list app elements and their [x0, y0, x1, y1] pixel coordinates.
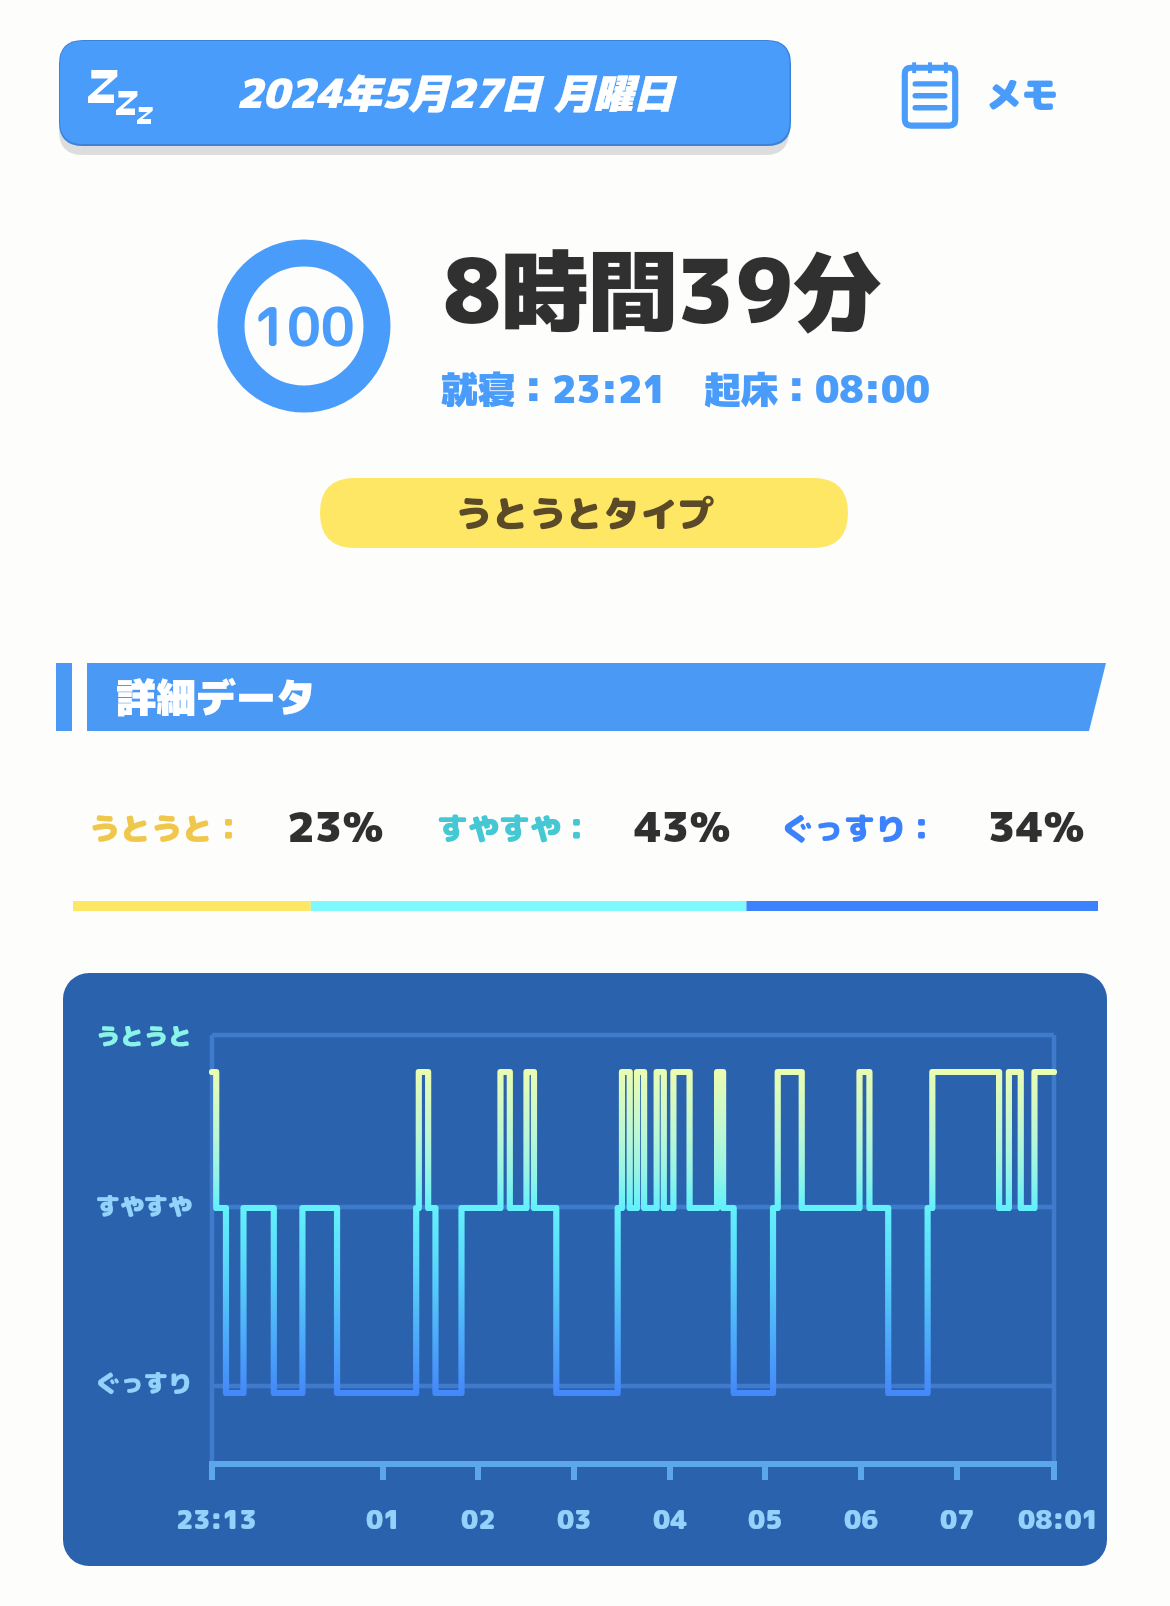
staticText: 8時間39分 — [443, 228, 882, 351]
staticText: 就寝：23:21 起床：08:00 — [441, 363, 930, 415]
staticText: うとうと — [96, 1019, 192, 1052]
staticText: うとうとタイプ — [455, 487, 714, 539]
staticText: メモ — [986, 69, 1059, 119]
staticText: 43% — [634, 797, 731, 856]
staticText: うとうと： — [89, 807, 244, 850]
staticText: 34% — [988, 797, 1085, 856]
staticText: 01 — [366, 1501, 401, 1535]
staticText: すやすや — [96, 1189, 192, 1222]
staticText: 05 — [748, 1501, 783, 1535]
staticText: 04 — [653, 1501, 688, 1535]
button[interactable]: メモ — [894, 56, 1059, 132]
button[interactable]: うとうとタイプ — [320, 478, 848, 548]
staticText: 08:01 — [1018, 1501, 1099, 1535]
staticText: 詳細データ — [116, 669, 316, 725]
staticText: ぐっすり — [96, 1366, 192, 1399]
staticText: 06 — [844, 1501, 879, 1535]
staticText: 07 — [940, 1501, 975, 1535]
staticText: 02 — [461, 1501, 496, 1535]
staticText: 03 — [557, 1501, 592, 1535]
staticText: 100 — [253, 289, 355, 363]
staticText: 23% — [287, 797, 384, 856]
staticText: すやすや： — [437, 807, 592, 850]
button[interactable]: 2024年5月27日 月曜日 — [60, 41, 790, 145]
staticText: 2024年5月27日 月曜日 — [236, 65, 674, 121]
staticText: ぐっすり： — [782, 807, 937, 850]
staticText: 23:13 — [176, 1501, 257, 1535]
